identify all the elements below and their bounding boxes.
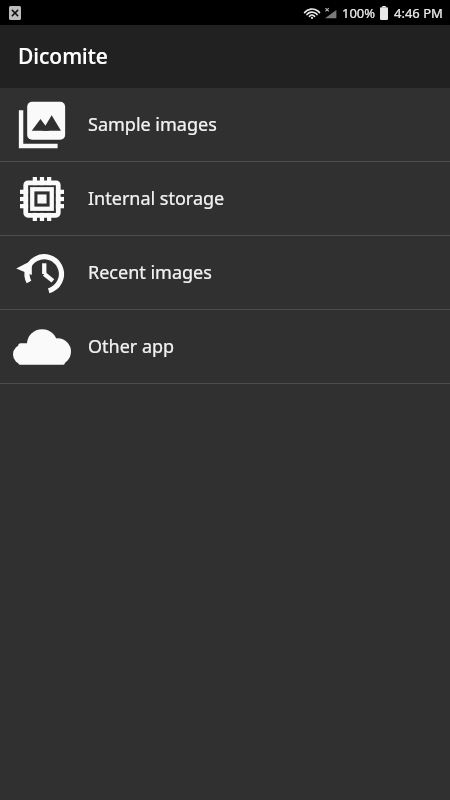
- other: Sample images: [16, 99, 68, 151]
- staticText: 4:46 PM: [394, 4, 443, 22]
- other: Other app: [13, 328, 71, 366]
- staticText: Internal storage: [88, 186, 225, 211]
- button[interactable]: Recent images: [0, 236, 450, 309]
- button[interactable]: Sample images: [0, 88, 450, 161]
- button[interactable]: Internal storage: [0, 162, 450, 235]
- staticText: Recent images: [88, 260, 212, 285]
- staticText: Other app: [88, 334, 175, 359]
- other: Internal storage: [17, 174, 67, 224]
- other: Recent images: [17, 248, 67, 298]
- staticText: Sample images: [88, 112, 217, 137]
- staticText: 100%: [342, 4, 376, 22]
- staticText: Dicomite: [18, 42, 108, 71]
- button[interactable]: Other app: [0, 310, 450, 383]
